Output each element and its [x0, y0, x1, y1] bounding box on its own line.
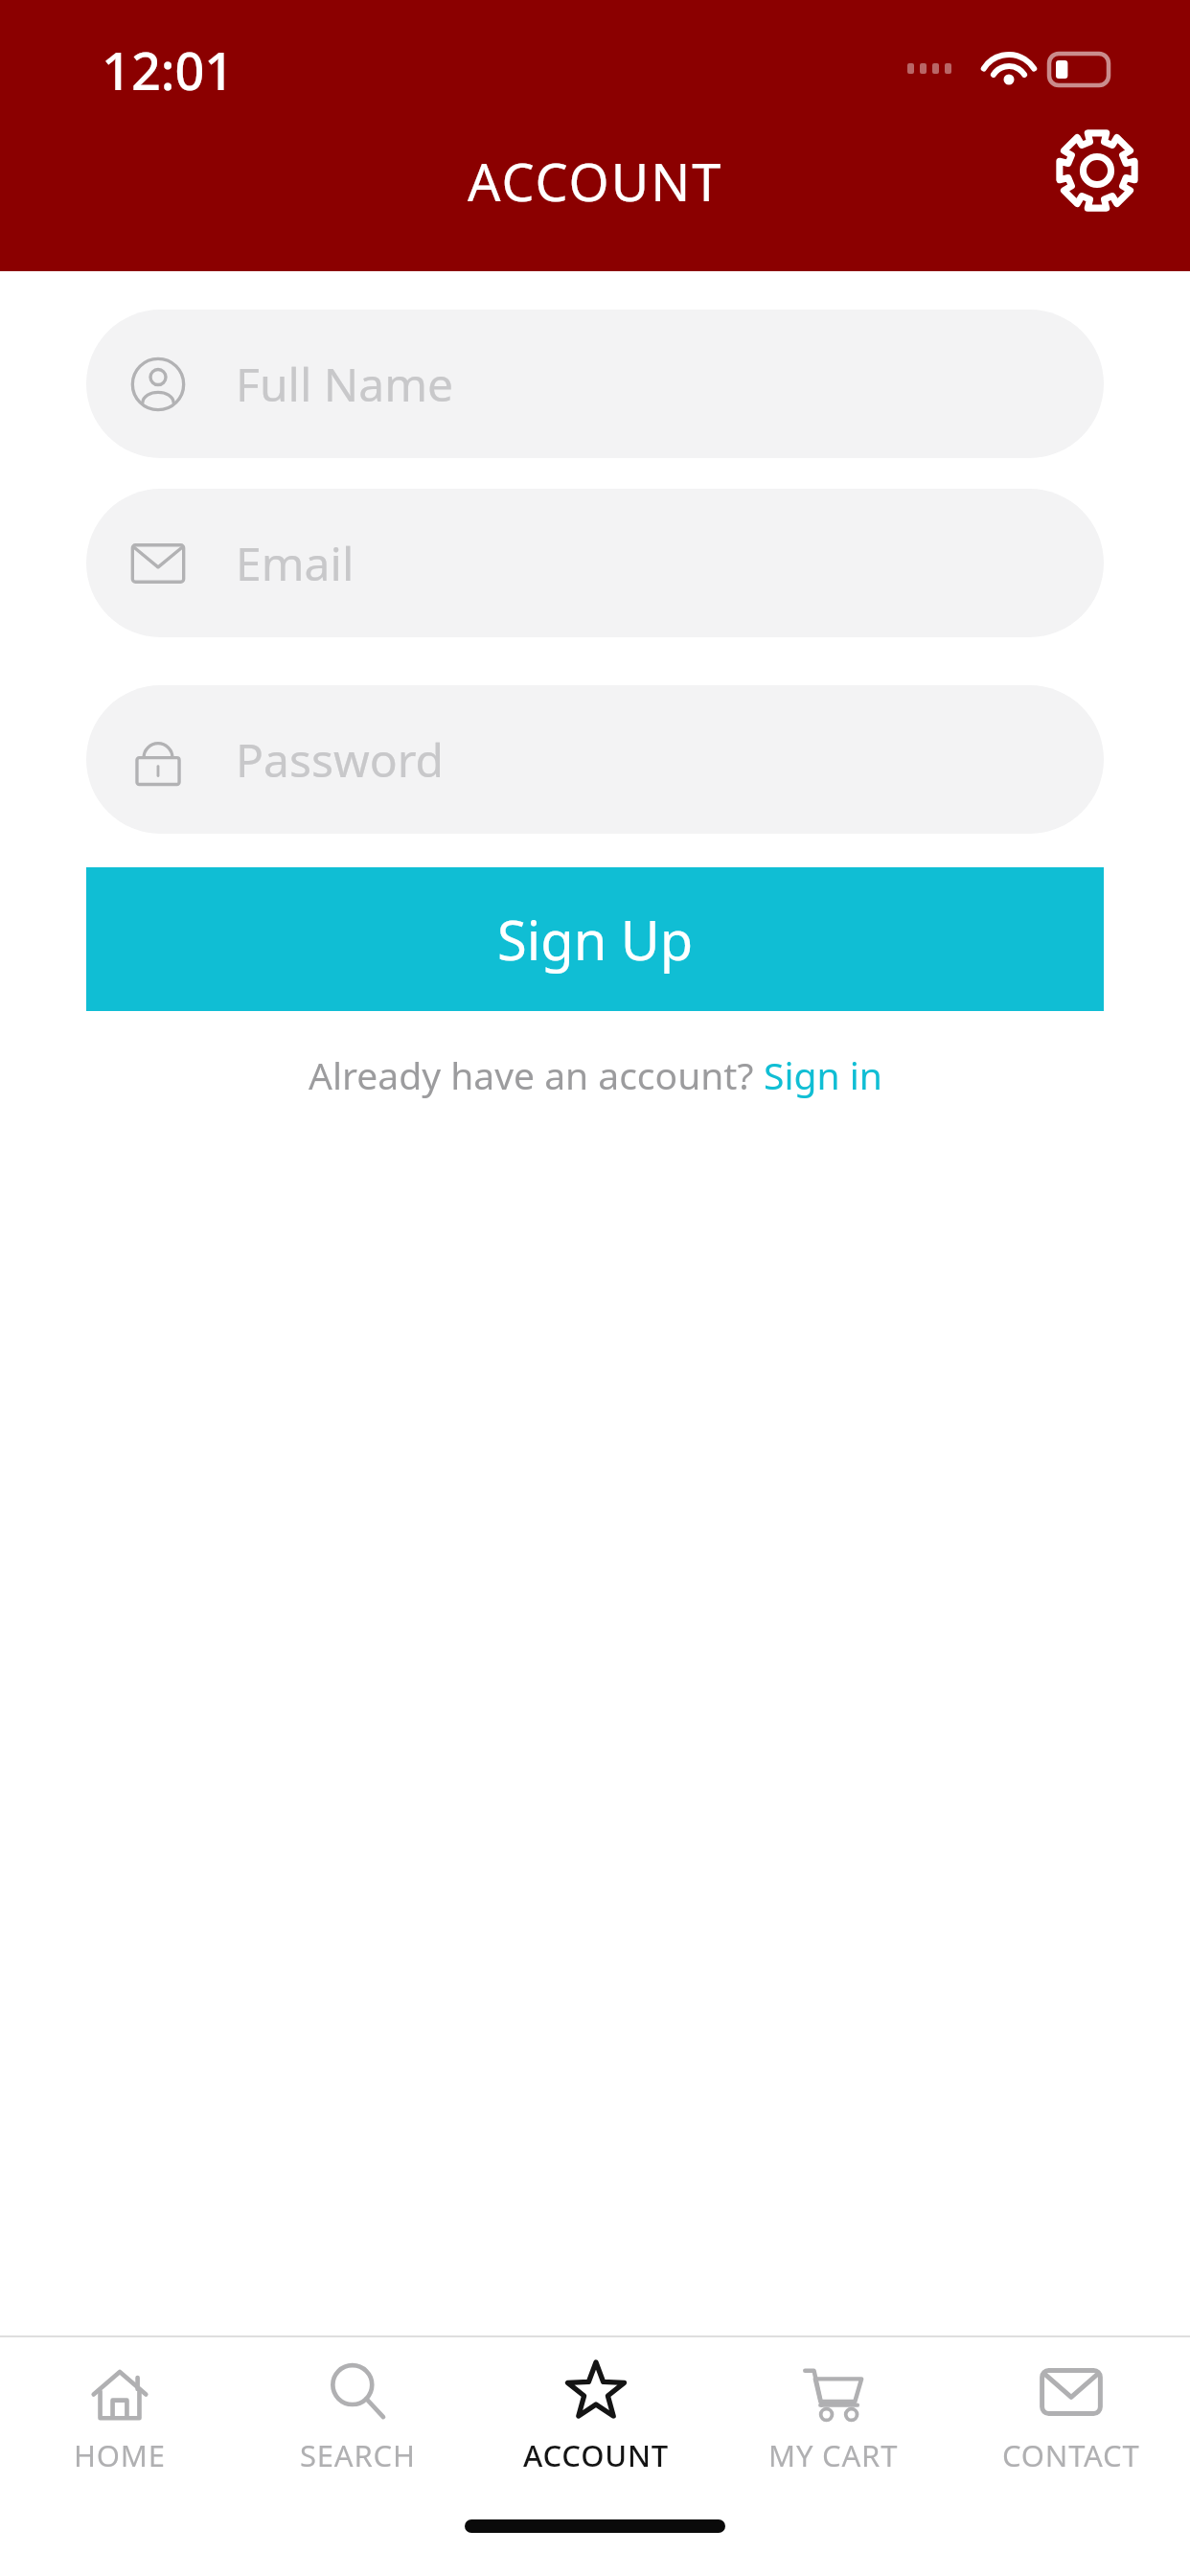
- staticText: CONTACT: [1002, 2435, 1140, 2475]
- button[interactable]: SEARCH: [239, 2337, 477, 2500]
- button[interactable]: Email: [86, 489, 1104, 637]
- staticText: ACCOUNT: [468, 146, 723, 217]
- staticText: Password: [236, 728, 445, 791]
- staticText: MY CART: [768, 2435, 899, 2475]
- button[interactable]: HOME: [0, 2337, 239, 2500]
- button[interactable]: CONTACT: [952, 2337, 1190, 2500]
- staticText: ACCOUNT: [523, 2435, 670, 2475]
- button[interactable]: Sign in: [764, 1049, 882, 1100]
- button[interactable]: Full Name: [86, 310, 1104, 458]
- button[interactable]: Password: [86, 685, 1104, 834]
- staticText: Already have an account?: [309, 1049, 764, 1100]
- staticText: Sign in: [764, 1049, 882, 1100]
- button[interactable]: ACCOUNT: [477, 2337, 715, 2500]
- staticText: Sign Up: [497, 903, 694, 976]
- button[interactable]: Settings: [1052, 126, 1142, 216]
- staticText: Email: [236, 532, 355, 594]
- button[interactable]: MY CART: [715, 2337, 952, 2500]
- staticText: 12:01: [102, 34, 235, 105]
- button[interactable]: Sign Up: [86, 867, 1104, 1011]
- staticText: Full Name: [236, 353, 454, 415]
- staticText: HOME: [74, 2435, 166, 2475]
- staticText: SEARCH: [300, 2435, 416, 2475]
